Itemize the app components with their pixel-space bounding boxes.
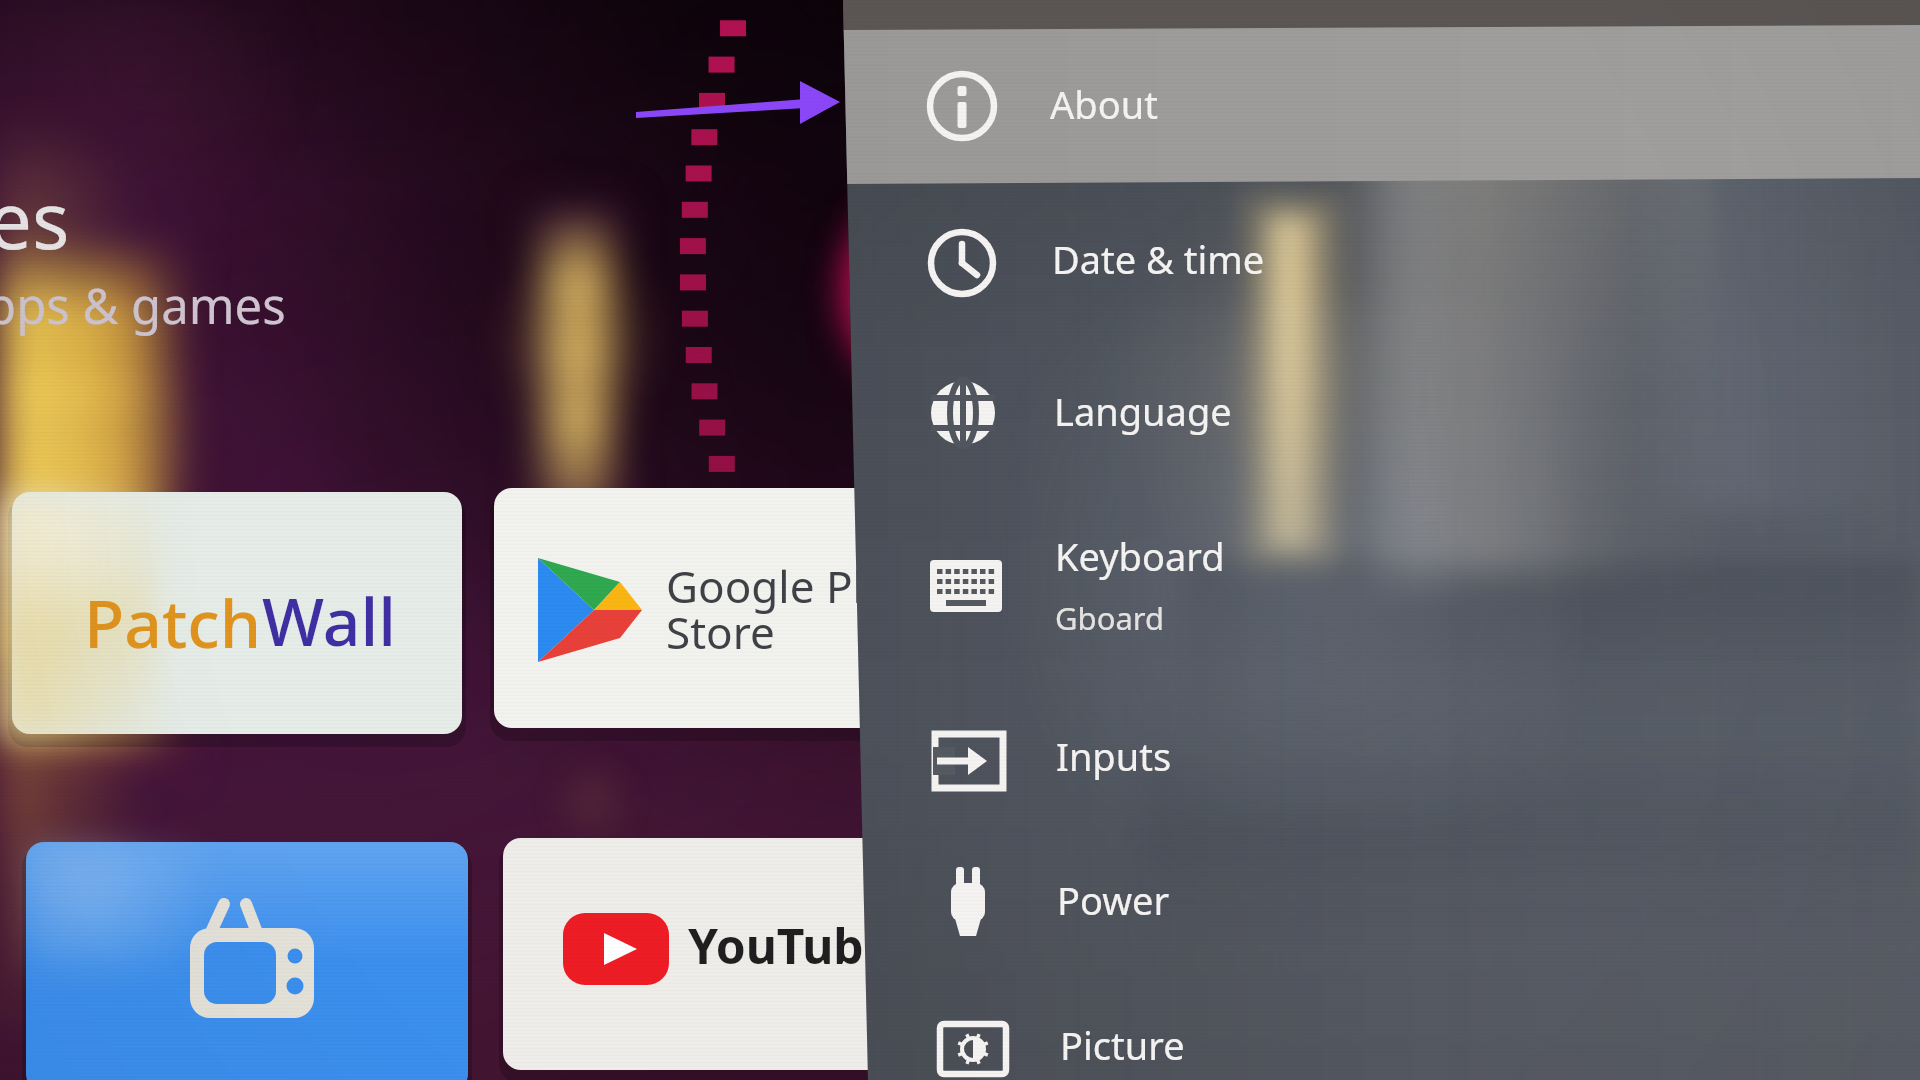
button[interactable]: Date & time bbox=[843, 188, 1920, 332]
staticText: Inputs bbox=[1056, 730, 1172, 782]
staticText: Google Play bbox=[666, 556, 912, 616]
button[interactable]: PatchWall bbox=[12, 492, 462, 734]
staticText: Power bbox=[1057, 874, 1170, 926]
button[interactable]: Picture bbox=[843, 973, 1920, 1080]
staticText: Wall bbox=[262, 575, 397, 665]
button[interactable]: Keyboard bbox=[843, 508, 1920, 652]
staticText: Patch bbox=[84, 577, 262, 667]
button[interactable]: Language bbox=[843, 340, 1920, 484]
staticText: Keyboard bbox=[1055, 530, 1225, 582]
staticText: es bbox=[0, 166, 70, 272]
staticText: Date & time bbox=[1052, 233, 1265, 285]
staticText: Language bbox=[1054, 385, 1232, 437]
button[interactable]: Live TV bbox=[26, 842, 468, 1080]
staticText: Store bbox=[666, 602, 775, 662]
staticText: pps & games bbox=[0, 272, 286, 339]
button[interactable]: YouTube bbox=[503, 838, 844, 1070]
button[interactable]: Power bbox=[843, 828, 1920, 972]
staticText: Picture bbox=[1060, 1019, 1185, 1071]
button[interactable]: Inputs bbox=[843, 685, 1920, 829]
button[interactable]: Google Play Store bbox=[494, 488, 844, 728]
button[interactable]: About bbox=[843, 33, 1920, 177]
staticText: Gboard bbox=[1055, 597, 1165, 639]
staticText: About bbox=[1050, 78, 1158, 130]
staticText: YouTube bbox=[688, 913, 893, 978]
